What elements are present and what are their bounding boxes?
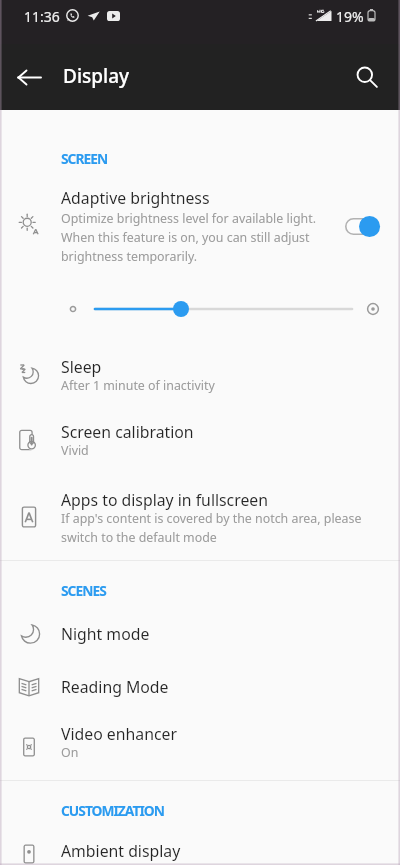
staticText: Apps to display in fullscreen <box>61 489 268 511</box>
staticText: If app's content is covered by the notch… <box>61 510 362 546</box>
staticText: CUSTOMIZATION <box>61 801 164 820</box>
button[interactable]: Apps to display in fullscreen <box>0 484 400 556</box>
staticText: Optimize brightness level for available … <box>61 210 316 265</box>
staticText: Adaptive brightness <box>61 187 210 209</box>
button[interactable]: Adaptive brightness <box>0 178 400 274</box>
staticText: 19% <box>336 7 364 26</box>
button[interactable]: Video enhancer <box>0 718 400 780</box>
staticText: SCREEN <box>61 149 108 168</box>
staticText: Ambient display <box>61 840 181 862</box>
staticText: Sleep <box>61 356 102 378</box>
button[interactable]: Adaptive brightness toggle <box>332 198 388 254</box>
button[interactable]: Night mode <box>0 613 400 665</box>
staticText: After 1 minute of inactivity <box>61 377 215 394</box>
button[interactable]: Back <box>7 55 51 99</box>
staticText: 11:36 <box>24 7 60 26</box>
staticText: Night mode <box>61 623 150 645</box>
button[interactable]: Ambient display <box>0 830 400 865</box>
button[interactable]: Search <box>345 55 389 99</box>
staticText: Display <box>63 63 130 89</box>
button[interactable]: Screen calibration <box>0 416 400 478</box>
staticText: Vivid <box>61 442 89 459</box>
staticText: Reading Mode <box>61 676 169 698</box>
staticText: On <box>61 744 79 761</box>
staticText: Video enhancer <box>61 723 177 745</box>
staticText: Screen calibration <box>61 421 194 443</box>
staticText: SCENES <box>61 581 106 600</box>
button[interactable]: Sleep <box>0 351 400 413</box>
button[interactable]: Brightness slider <box>0 294 400 324</box>
button[interactable]: Reading Mode <box>0 666 400 718</box>
